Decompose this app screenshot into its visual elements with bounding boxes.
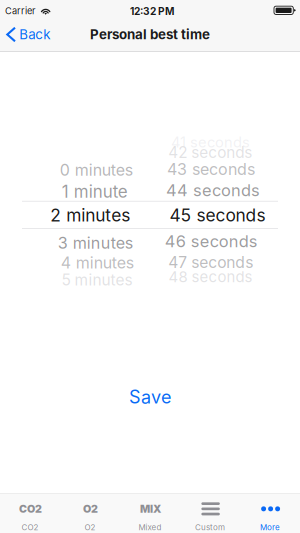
staticText: 48 seconds [168, 268, 252, 286]
staticText: 43 seconds [167, 159, 255, 179]
staticText: Back [19, 26, 50, 42]
staticText: Custom [195, 522, 225, 532]
staticText: 0 minutes [60, 160, 133, 180]
staticText: 45 seconds [170, 205, 266, 226]
button[interactable]: More [240, 494, 300, 533]
staticText: 2 minutes [50, 205, 130, 226]
staticText: MIX [140, 502, 161, 515]
staticText: Carrier [5, 5, 35, 16]
staticText: 41 seconds [171, 133, 250, 151]
button[interactable]: Back [0, 19, 58, 49]
staticText: 4 minutes [61, 253, 134, 272]
button[interactable]: CO2 [0, 494, 60, 533]
staticText: 12:32 PM [130, 5, 174, 17]
staticText: 1 minute [62, 181, 128, 202]
button[interactable]: Custom [180, 494, 240, 533]
staticText: O2 [84, 522, 95, 532]
staticText: Save [129, 386, 171, 408]
button[interactable]: Save [90, 380, 210, 414]
staticText: More [260, 522, 280, 532]
staticText: O2 [83, 502, 98, 515]
staticText: 5 minutes [61, 270, 132, 289]
staticText: CO2 [21, 522, 38, 532]
staticText: Personal best time [90, 26, 210, 42]
staticText: 46 seconds [165, 231, 258, 251]
button[interactable]: MIX [120, 494, 180, 533]
staticText: 3 minutes [58, 233, 134, 253]
staticText: 44 seconds [166, 180, 260, 200]
staticText: CO2 [19, 502, 42, 515]
staticText: 47 seconds [168, 253, 253, 272]
button[interactable]: Seconds [150, 134, 300, 290]
button[interactable]: O2 [60, 494, 120, 533]
button[interactable]: Minutes [0, 134, 150, 290]
staticText: 42 seconds [168, 143, 252, 162]
staticText: Mixed [138, 522, 161, 532]
